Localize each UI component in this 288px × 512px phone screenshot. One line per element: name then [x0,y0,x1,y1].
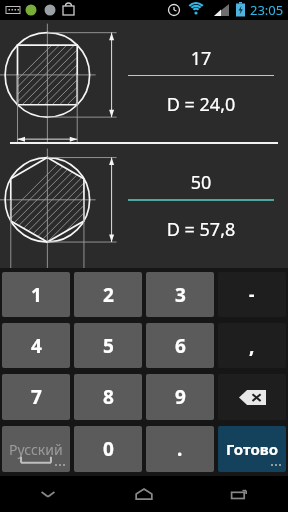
button[interactable]: 7 [2,374,70,420]
staticText: 6 [175,333,186,359]
button[interactable]: 17 [128,46,274,76]
staticText: 50 [128,170,274,195]
staticText: Готово [226,439,279,459]
staticText: . [177,436,183,462]
button[interactable]: 2 [74,272,142,317]
button[interactable]: 6 [146,323,214,368]
button[interactable]: Home [96,476,192,512]
staticText: 5 [103,333,114,359]
staticText: D = 57,8 [128,217,274,242]
staticText: 8 [103,384,114,410]
button[interactable]: 5 [74,323,142,368]
button[interactable]: 0 [74,426,142,472]
staticText: 17 [128,46,274,71]
button[interactable]: . [146,426,214,472]
staticText: 7 [31,384,42,410]
button[interactable]: Русский [2,426,70,472]
button[interactable]: Backspace [218,374,286,420]
button[interactable]: 50 [128,170,274,201]
staticText: 3 [175,282,186,308]
button[interactable]: 4 [2,323,70,368]
staticText: 0 [103,436,114,462]
button[interactable]: 8 [74,374,142,420]
button[interactable]: 9 [146,374,214,420]
button[interactable]: 1 [2,272,70,317]
staticText: - [249,283,255,306]
button[interactable]: Back [0,476,96,512]
staticText: 1 [31,282,42,308]
button[interactable]: Recents [192,476,288,512]
button[interactable]: , [218,323,286,368]
staticText: Русский [9,440,63,459]
staticText: , [249,333,255,359]
staticText: 4 [31,333,42,359]
staticText: 9 [175,384,186,410]
button[interactable]: 3 [146,272,214,317]
button[interactable]: Готово [218,426,286,472]
staticText: 2 [103,282,114,308]
button[interactable]: - [218,272,286,317]
staticText: D = 24,0 [128,92,274,117]
staticText: 23:05 [250,1,284,19]
